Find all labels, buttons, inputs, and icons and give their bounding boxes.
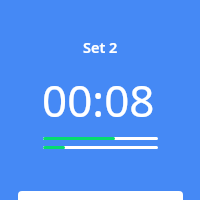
staticText: Set 2: [83, 37, 118, 57]
button[interactable]: Stop workout: [18, 191, 183, 200]
staticText: 00:08: [42, 70, 155, 130]
button[interactable]: 00:08: [42, 70, 155, 130]
